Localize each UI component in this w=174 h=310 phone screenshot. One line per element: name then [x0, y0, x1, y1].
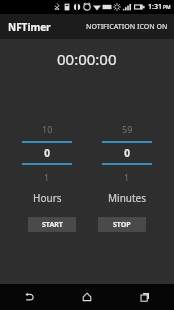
staticText: 1:31 [148, 2, 162, 12]
staticText: 10 [42, 123, 53, 135]
button[interactable]: Back [0, 284, 58, 310]
staticText: START [42, 220, 63, 230]
button[interactable]: Recent apps [116, 284, 174, 310]
staticText: 0 [124, 146, 130, 160]
staticText: 1 [44, 171, 50, 183]
staticText: STOP [113, 220, 131, 230]
button[interactable]: 59 [98, 121, 156, 185]
staticText: Minutes [108, 191, 147, 205]
staticText: 59 [122, 123, 133, 135]
staticText: NOTIFICATION ICON ON [86, 22, 168, 32]
button[interactable]: START [28, 217, 76, 232]
button[interactable]: 10 [18, 121, 76, 185]
staticText: Hours [33, 191, 62, 205]
button[interactable]: Home [58, 284, 116, 310]
button[interactable]: STOP [98, 217, 146, 232]
staticText: 1 [124, 171, 130, 183]
staticText: 00:00:00 [57, 49, 117, 69]
staticText: NFTimer [8, 20, 51, 34]
staticText: PM [163, 4, 171, 11]
staticText: 0 [44, 146, 50, 160]
button[interactable]: NOTIFICATION ICON ON [80, 18, 174, 36]
